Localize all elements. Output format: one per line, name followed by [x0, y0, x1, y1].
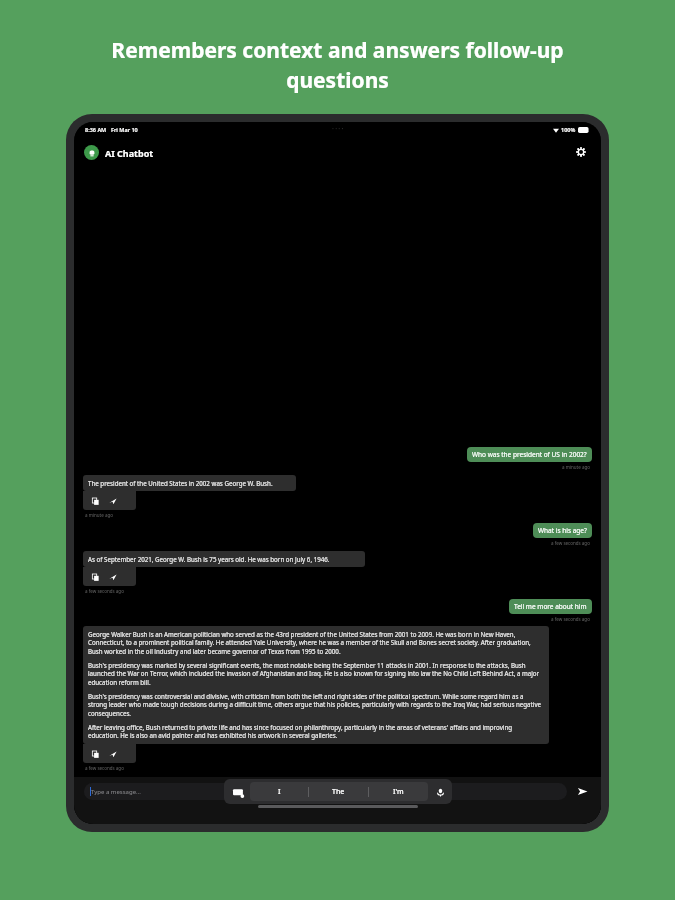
button[interactable]: Keyboard: [230, 784, 246, 800]
button[interactable]: AI Chatbot: [84, 145, 154, 160]
button[interactable]: As of September 2021, George W. Bush is …: [83, 551, 365, 567]
button[interactable]: What is his age?: [533, 523, 592, 538]
staticText: 8:36 AM: [85, 126, 107, 133]
button[interactable]: Settings: [571, 142, 591, 162]
staticText: Remembers context and answers follow-up …: [22, 36, 653, 94]
button[interactable]: The: [309, 782, 368, 801]
staticText: After leaving office, Bush returned to p…: [88, 723, 544, 740]
button[interactable]: Share: [107, 571, 119, 583]
staticText: • • • •: [332, 126, 344, 133]
staticText: George Walker Bush is an American politi…: [88, 630, 544, 656]
button[interactable]: Copy: [89, 495, 101, 507]
staticText: Type a message...: [91, 788, 141, 796]
staticText: The president of the United States in 20…: [88, 479, 273, 487]
staticText: a minute ago: [85, 512, 113, 518]
button[interactable]: Share: [107, 495, 119, 507]
staticText: a few seconds ago: [85, 765, 124, 771]
button[interactable]: George Walker Bush is an American politi…: [83, 626, 549, 744]
staticText: AI Chatbot: [105, 147, 154, 159]
staticText: Who was the president of US in 2002?: [472, 450, 587, 459]
staticText: Bush's presidency was controversial and …: [88, 692, 544, 718]
button[interactable]: Send: [573, 782, 591, 800]
staticText: Tell me more about him: [514, 602, 587, 611]
button[interactable]: Type a message...: [84, 783, 567, 800]
staticText: I: [278, 787, 281, 797]
staticText: Bush's presidency was marked by several …: [88, 661, 544, 687]
staticText: As of September 2021, George W. Bush is …: [88, 555, 330, 563]
staticText: a few seconds ago: [551, 540, 590, 546]
button[interactable]: Who was the president of US in 2002?: [467, 447, 592, 462]
button[interactable]: I'm: [369, 782, 428, 801]
button[interactable]: I: [250, 782, 308, 801]
button[interactable]: Dictate: [432, 784, 448, 800]
staticText: The: [332, 787, 345, 797]
button[interactable]: Tell me more about him: [509, 599, 592, 614]
button[interactable]: Copy: [89, 748, 101, 760]
staticText: 100%: [561, 126, 576, 133]
button[interactable]: Share: [107, 748, 119, 760]
button[interactable]: The president of the United States in 20…: [83, 475, 296, 491]
staticText: a minute ago: [562, 464, 590, 470]
staticText: Fri Mar 10: [111, 126, 138, 133]
staticText: a few seconds ago: [551, 616, 590, 622]
staticText: What is his age?: [538, 526, 587, 535]
button[interactable]: Copy: [89, 571, 101, 583]
staticText: I'm: [393, 787, 404, 797]
staticText: a few seconds ago: [85, 588, 124, 594]
